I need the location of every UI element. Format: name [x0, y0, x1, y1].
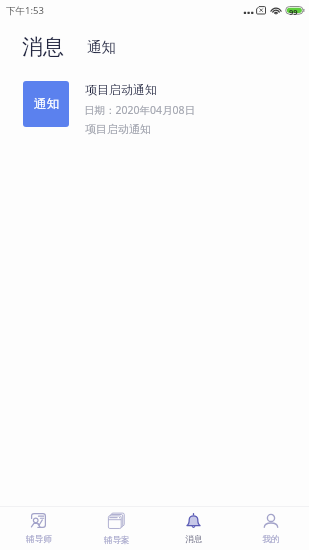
staticText: 辅导案 — [104, 535, 130, 546]
button[interactable]: 通知 — [0, 72, 309, 138]
staticText: 项目启动通知 — [85, 82, 157, 97]
staticText: 日期：2020年04月08日 — [84, 103, 196, 117]
button[interactable]: 消息 — [155, 507, 232, 550]
button[interactable]: 辅导师 — [0, 507, 78, 550]
staticText: 我的 — [262, 534, 280, 545]
staticText: 辅导师 — [26, 534, 52, 545]
staticText: 消息 — [185, 534, 203, 545]
staticText: 通知 — [87, 38, 116, 56]
staticText: 下午1:53 — [6, 4, 44, 17]
staticText: 消息 — [22, 34, 64, 60]
button[interactable]: 我的 — [232, 507, 309, 550]
button[interactable]: 辅导案 — [78, 507, 155, 550]
staticText: 通知 — [34, 96, 59, 112]
staticText: 项目启动通知 — [85, 122, 151, 136]
staticText: 99 — [289, 7, 298, 17]
